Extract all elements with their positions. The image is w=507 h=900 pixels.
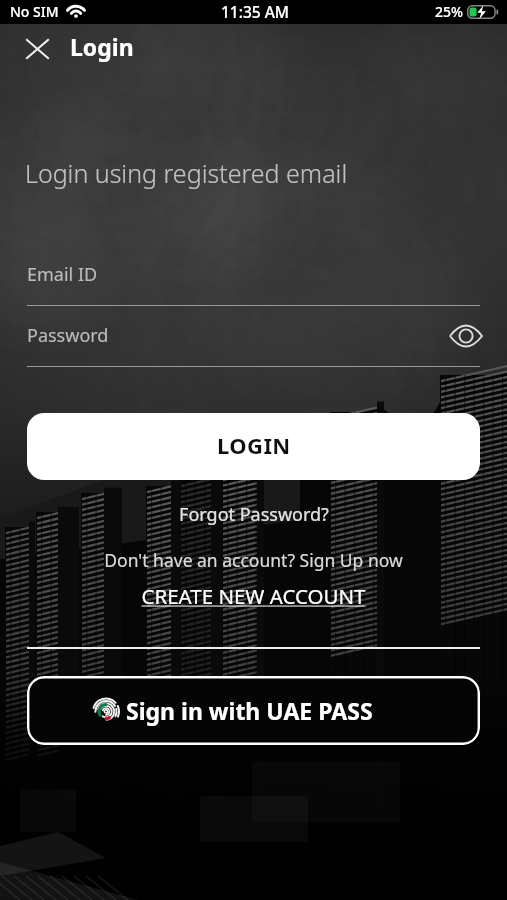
staticText: Login using registered email [25,156,348,190]
staticText: Password [27,323,109,348]
button[interactable]: Forgot Password? [173,500,335,529]
staticText: Login [70,31,134,62]
button[interactable]: Password [27,319,480,367]
staticText: Email ID [27,262,98,287]
button[interactable]: Don't have an account? Sign Up now [98,546,409,574]
button[interactable]: Email ID [27,258,480,306]
button[interactable]: Close [18,29,56,67]
staticText: Sign in with UAE PASS [126,695,373,726]
staticText: 11:35 AM [221,1,290,22]
staticText: LOGIN [217,430,291,460]
staticText: No SIM [10,2,59,21]
button[interactable]: CREATE NEW ACCOUNT [135,580,372,612]
button[interactable]: LOGIN [27,413,480,480]
other: Show password [449,324,483,348]
staticText: 25% [435,2,463,21]
button[interactable]: Sign in with UAE PASS [27,676,480,745]
